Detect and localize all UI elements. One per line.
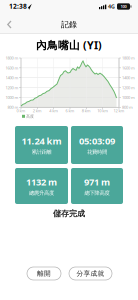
staticText: 1800 m bbox=[122, 55, 135, 61]
staticText: 總下降高度 bbox=[84, 190, 109, 196]
staticText: 1000 m bbox=[122, 95, 135, 100]
button[interactable]: Back bbox=[3, 17, 15, 31]
staticText: 1600 m bbox=[5, 65, 18, 70]
staticText: 05:03:09 bbox=[79, 135, 115, 147]
staticText: 總爬升高度 bbox=[29, 190, 54, 196]
staticText: 1800 m bbox=[5, 55, 18, 61]
staticText: 1200 m bbox=[122, 85, 135, 90]
staticText: 儲存完成 bbox=[53, 209, 85, 218]
staticText: 1000 m bbox=[5, 95, 18, 100]
staticText: 內鳥嘴山 (YI) bbox=[36, 38, 102, 52]
staticText: 100 bbox=[120, 4, 126, 9]
staticText: 高度 bbox=[26, 114, 34, 119]
staticText: 1400 m bbox=[5, 75, 18, 80]
staticText: 971 m bbox=[84, 176, 110, 188]
staticText: 12:38 bbox=[9, 2, 27, 11]
button[interactable]: 分享成就 bbox=[69, 267, 112, 280]
staticText: 1400 m bbox=[122, 75, 135, 80]
staticText: 8 km bbox=[82, 108, 91, 113]
staticText: 累計距離 bbox=[31, 149, 51, 155]
staticText: 6 km bbox=[65, 108, 74, 113]
staticText: 1200 m bbox=[5, 85, 18, 90]
staticText: 2 km bbox=[33, 108, 42, 113]
staticText: 10 km bbox=[97, 108, 108, 113]
staticText: 離開 bbox=[37, 269, 51, 278]
staticText: 800 m bbox=[7, 105, 18, 110]
staticText: 11.24 km bbox=[21, 135, 61, 147]
staticText: 800 m bbox=[122, 105, 133, 110]
staticText: 12 km bbox=[113, 108, 124, 113]
staticText: 4G bbox=[108, 3, 115, 10]
staticText: 花費時間 bbox=[87, 149, 107, 155]
staticText: 分享成就 bbox=[76, 269, 104, 278]
staticText: 1132 m bbox=[26, 176, 57, 188]
staticText: 1600 m bbox=[122, 65, 135, 70]
button[interactable]: 離開 bbox=[27, 267, 61, 280]
staticText: 4 km bbox=[49, 108, 58, 113]
staticText: 記錄 bbox=[61, 20, 77, 29]
staticText: 0 km bbox=[16, 108, 25, 113]
